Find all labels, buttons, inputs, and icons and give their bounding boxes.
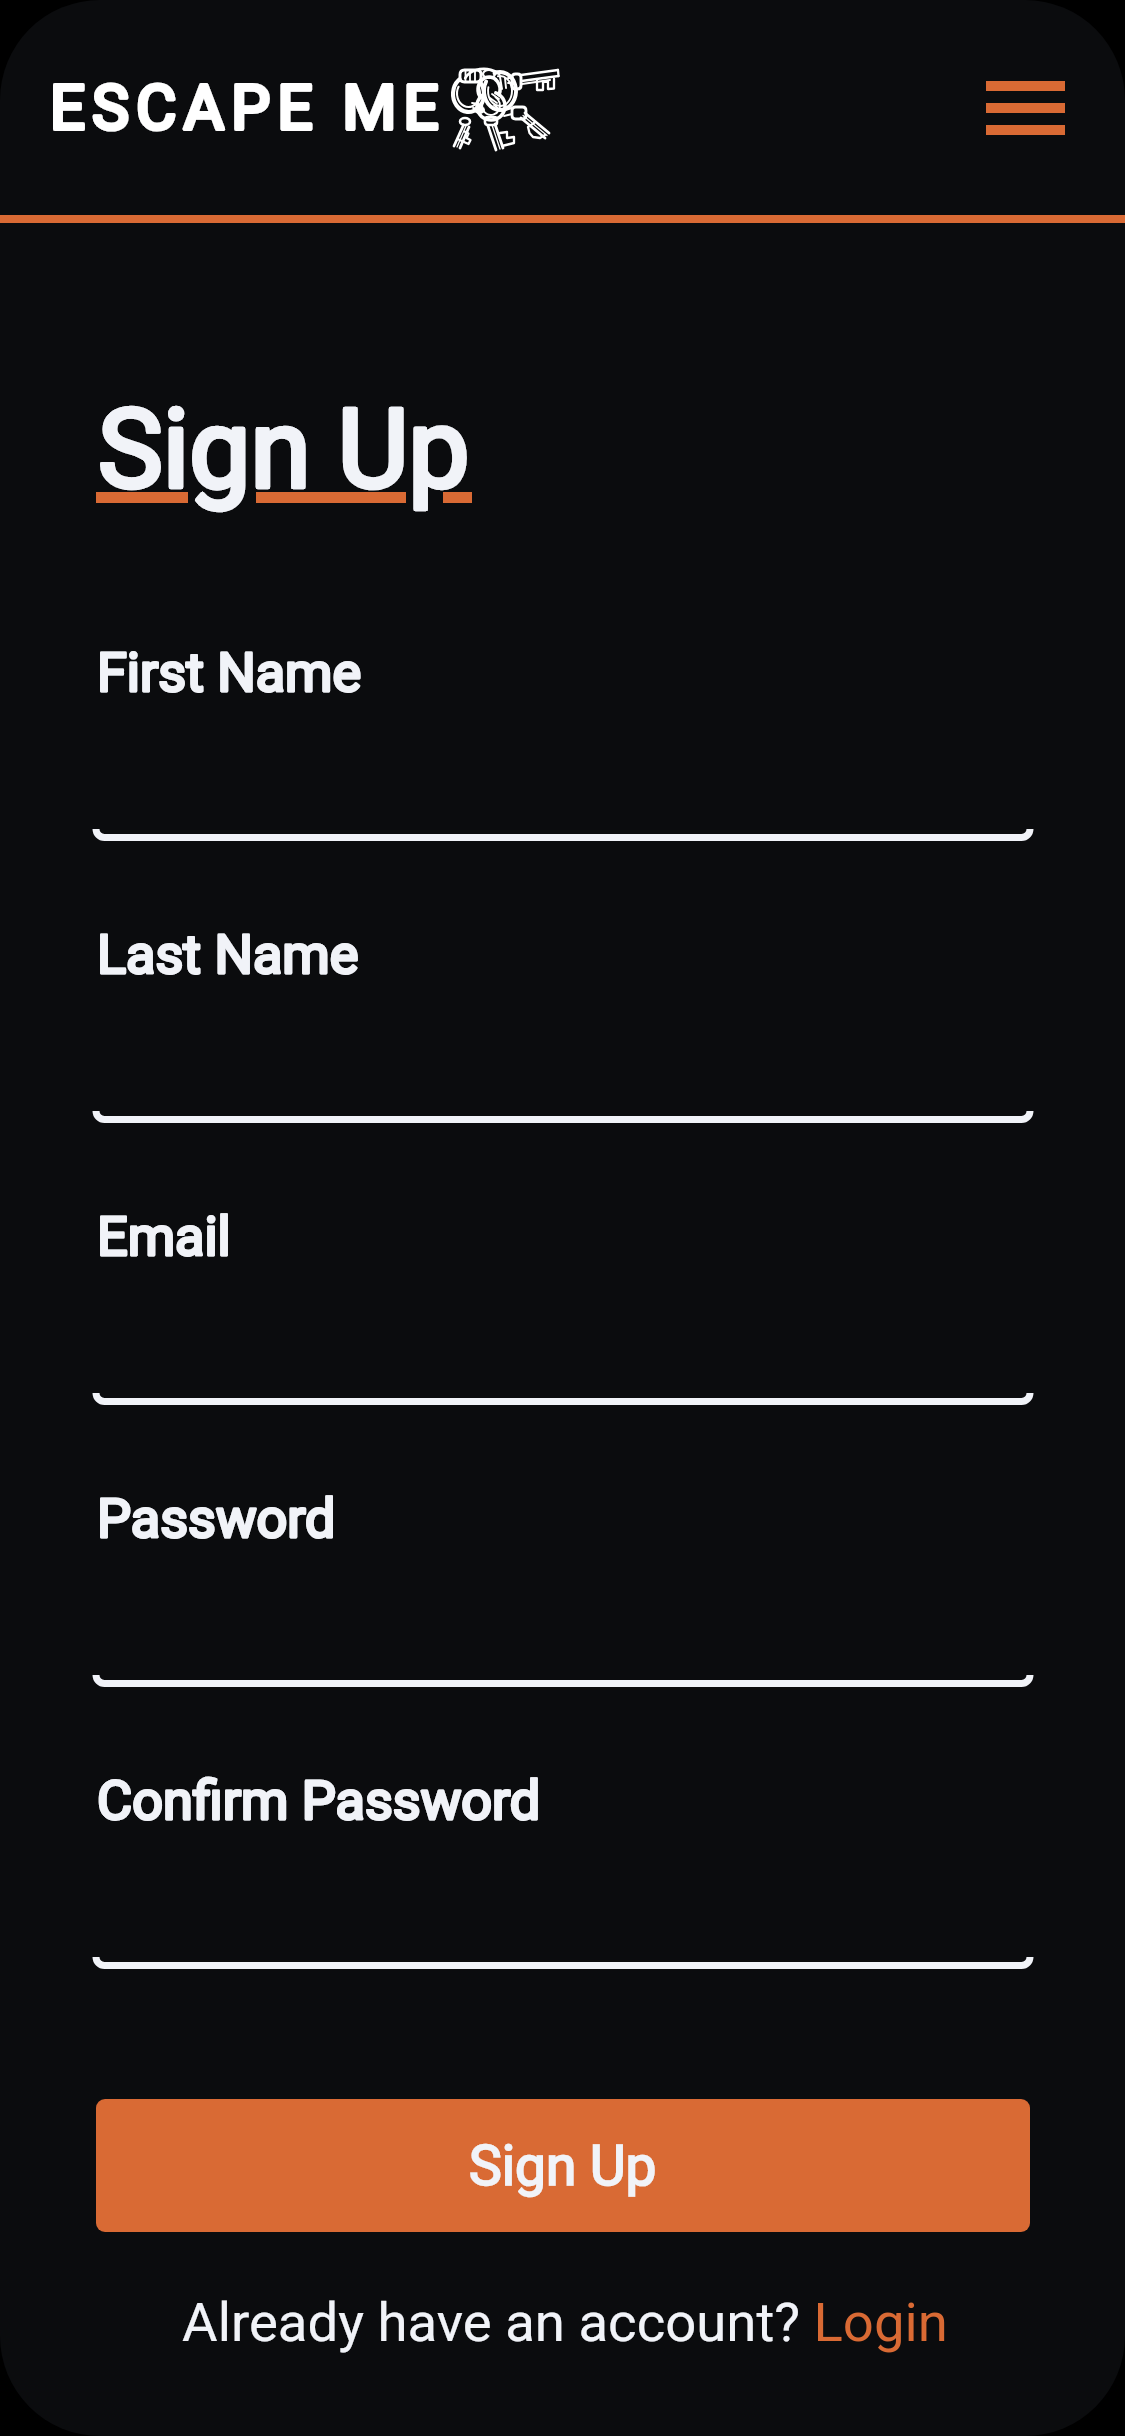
staticText: ESCAPE ME bbox=[50, 72, 446, 144]
staticText: Already have an account? Login bbox=[182, 2290, 948, 2354]
staticText: Last Name bbox=[97, 923, 359, 986]
staticText: Last Name bbox=[97, 923, 359, 986]
staticText: ESCAPE ME bbox=[50, 72, 446, 144]
staticText: Sign Up bbox=[98, 386, 470, 514]
staticText: Password bbox=[97, 1487, 336, 1550]
staticText: Confirm Password bbox=[97, 1769, 541, 1832]
button[interactable]: Email bbox=[96, 1248, 1030, 1404]
staticText: Email bbox=[97, 1205, 231, 1268]
staticText: Sign Up bbox=[469, 2134, 657, 2198]
staticText: Confirm Password bbox=[97, 1769, 541, 1832]
button[interactable]: First Name bbox=[96, 684, 1030, 840]
button[interactable]: Sign Up bbox=[96, 2099, 1030, 2232]
button[interactable]: Password bbox=[96, 1530, 1030, 1686]
button[interactable]: Already have an account? Login bbox=[150, 2284, 980, 2360]
button[interactable]: Open menu bbox=[955, 40, 1095, 175]
staticText: Password bbox=[97, 1487, 336, 1550]
staticText: Email bbox=[97, 1205, 231, 1268]
button[interactable]: Confirm Password bbox=[96, 1812, 1030, 1968]
staticText: Sign Up bbox=[98, 386, 470, 514]
staticText: First Name bbox=[97, 641, 362, 704]
button[interactable]: Escape Me home bbox=[40, 45, 570, 170]
staticText: First Name bbox=[97, 641, 362, 704]
button[interactable]: Last Name bbox=[96, 966, 1030, 1122]
